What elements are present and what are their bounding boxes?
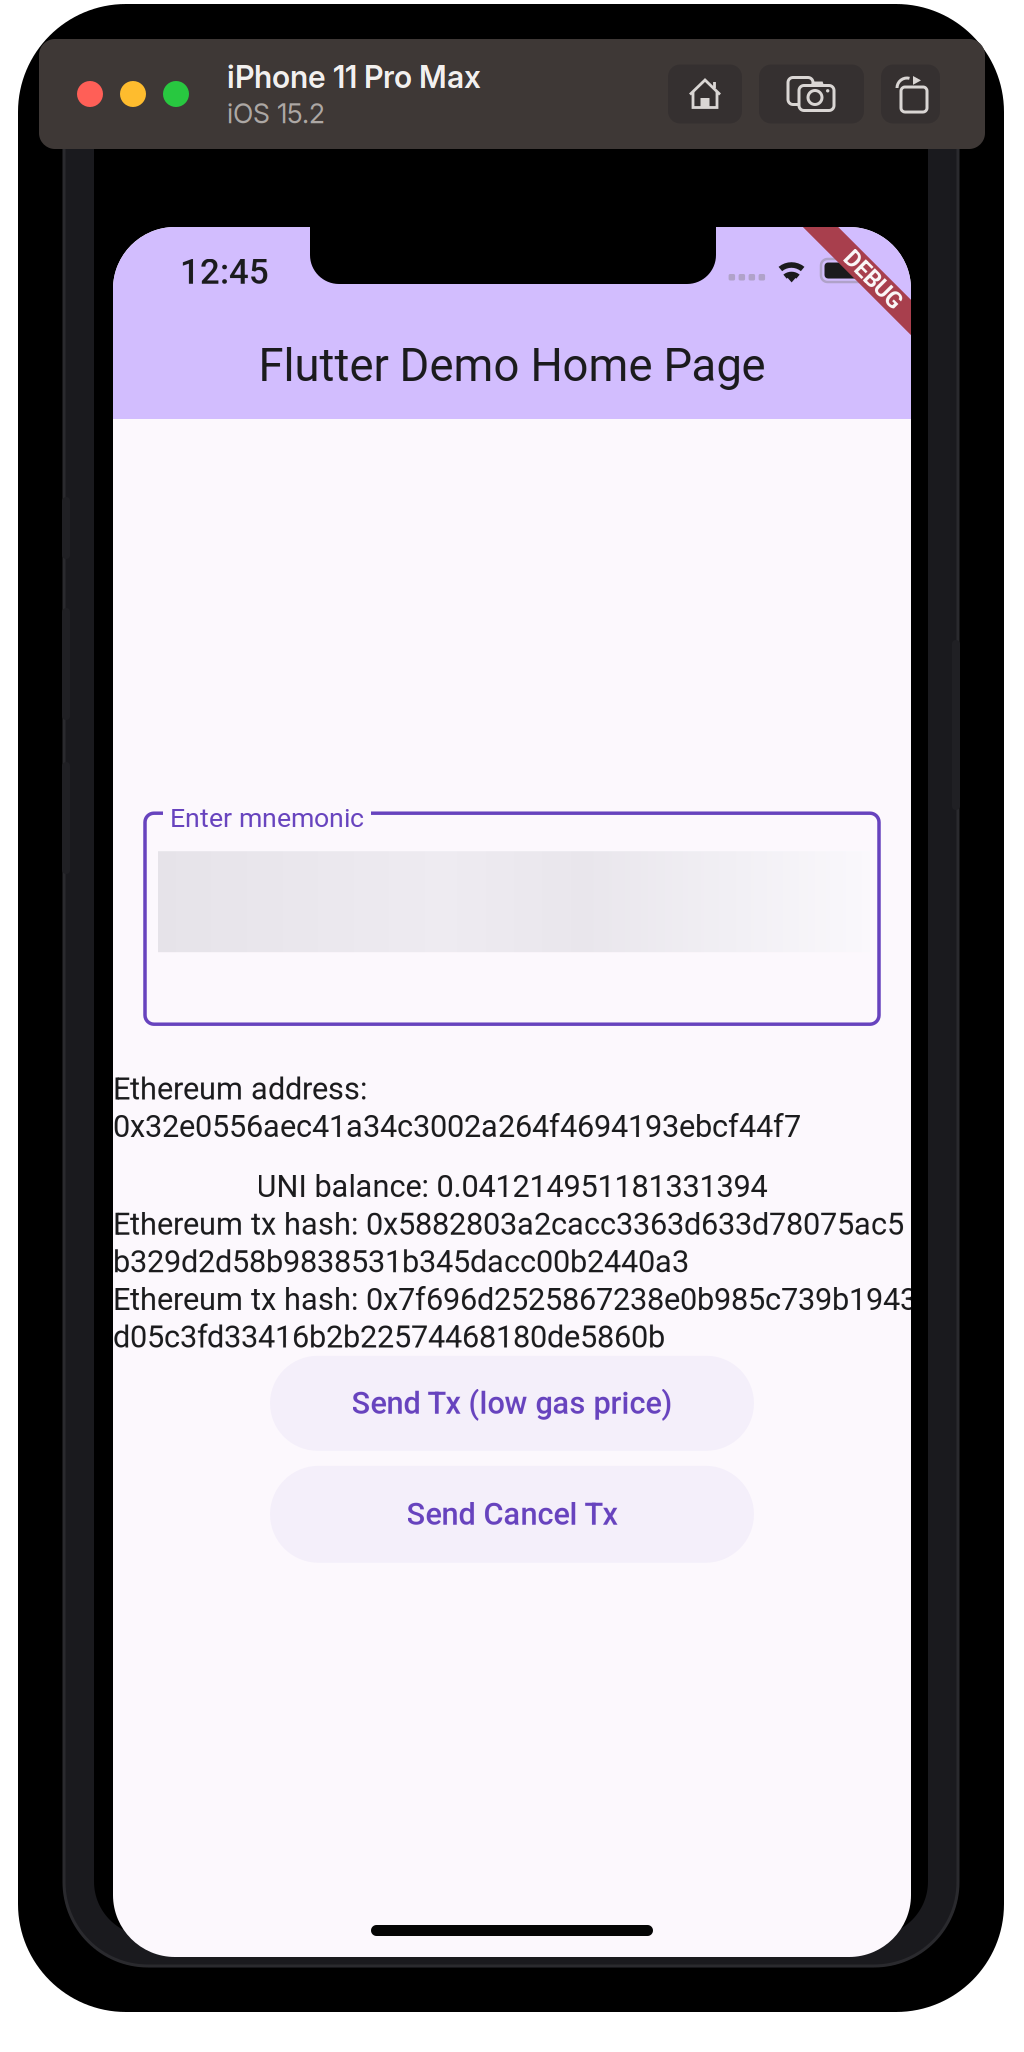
staticText: iOS 15.2	[227, 97, 325, 130]
staticText: 12:45	[180, 252, 269, 292]
staticText: UNI balance: 0.041214951181331394	[256, 1169, 767, 1204]
button[interactable]: Send Tx (low gas price)	[270, 1356, 754, 1451]
staticText: iPhone 11 Pro Max	[227, 58, 481, 95]
staticText: Ethereum tx hash: 0x7f696d2525867238e0b9…	[113, 1281, 917, 1317]
button[interactable]: Screenshot	[759, 64, 864, 123]
staticText: Send Tx (low gas price)	[351, 1385, 672, 1421]
staticText: Flutter Demo Home Page	[258, 339, 765, 392]
staticText: Ethereum tx hash: 0x5882803a2cacc3363d63…	[113, 1206, 904, 1242]
staticText: DEBUG	[837, 266, 909, 293]
staticText: Send Cancel Tx	[406, 1496, 617, 1532]
button[interactable]: Send Cancel Tx	[270, 1466, 754, 1563]
button[interactable]: Rotate	[881, 64, 940, 123]
staticText: b329d2d58b9838531b345dacc00b2440a3	[113, 1244, 689, 1280]
staticText: 0x32e0556aec41a34c3002a264f4694193ebcf44…	[113, 1109, 801, 1144]
staticText: Ethereum address:	[113, 1071, 367, 1107]
staticText: Enter mnemonic	[170, 802, 364, 833]
staticText: d05c3fd33416b2b22574468180de5860b	[113, 1319, 665, 1355]
button[interactable]: Home	[668, 64, 742, 123]
